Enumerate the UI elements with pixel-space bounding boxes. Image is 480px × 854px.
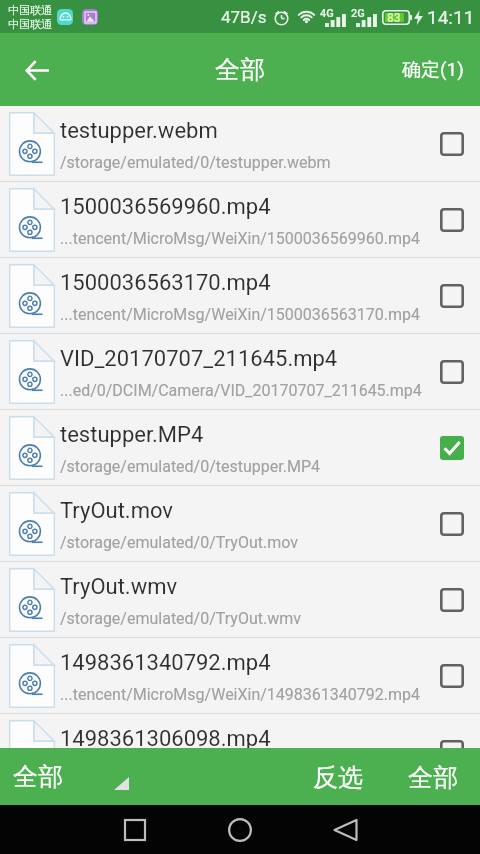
button[interactable]: 确定(1) — [386, 44, 480, 96]
staticText: /storage/emulated/0/TryOut.mov — [60, 533, 298, 552]
staticText: 47B/s — [221, 7, 267, 27]
staticText: 1498361306098.mp4 — [60, 726, 271, 748]
staticText: 1498361340792.mp4 — [60, 650, 271, 676]
staticText: TryOut.wmv — [60, 574, 178, 600]
staticText: ...tencent/MicroMsg/WeiXin/1500036569960… — [60, 229, 420, 248]
staticText: ...tencent/MicroMsg/WeiXin/1500036563170… — [60, 305, 420, 324]
button[interactable]: Back — [323, 808, 367, 852]
button[interactable]: Back — [13, 46, 61, 94]
staticText: 全部 — [13, 761, 63, 792]
button[interactable]: Select file — [440, 284, 464, 308]
button[interactable]: Select file — [440, 436, 464, 460]
staticText: ...ed/0/DCIM/Camera/VID_20170707_211645.… — [60, 381, 422, 400]
staticText: 反选 — [313, 762, 363, 791]
button[interactable]: Select file — [440, 664, 464, 688]
staticText: TryOut.mov — [60, 498, 173, 524]
button[interactable]: 1498361340792.mp4 — [0, 638, 480, 714]
button[interactable]: testupper.MP4 — [0, 410, 480, 486]
staticText: 14:11 — [427, 6, 475, 28]
button[interactable]: 1498361306098.mp4 — [0, 714, 480, 748]
staticText: 中国联通 — [8, 3, 52, 17]
button[interactable]: 全部 — [380, 748, 480, 805]
button[interactable]: Recent apps — [113, 808, 157, 852]
staticText: 全部 — [408, 762, 458, 791]
button[interactable]: 全部 — [0, 749, 141, 804]
button[interactable]: Home — [218, 808, 262, 852]
staticText: /storage/emulated/0/TryOut.wmv — [60, 609, 301, 628]
button[interactable]: 1500036569960.mp4 — [0, 182, 480, 258]
button[interactable]: 反选 — [296, 748, 380, 805]
staticText: 1500036563170.mp4 — [60, 270, 271, 296]
button[interactable]: TryOut.wmv — [0, 562, 480, 638]
staticText: 中国联通 — [8, 17, 52, 31]
staticText: /storage/emulated/0/testupper.webm — [60, 153, 331, 172]
staticText: VID_20170707_211645.mp4 — [60, 346, 338, 372]
staticText: testupper.webm — [60, 118, 218, 144]
staticText: 2G — [351, 7, 365, 20]
staticText: ...tencent/MicroMsg/WeiXin/1498361340792… — [60, 685, 420, 704]
staticText: 全部 — [215, 54, 265, 85]
button[interactable]: VID_20170707_211645.mp4 — [0, 334, 480, 410]
staticText: 83 — [387, 11, 401, 25]
staticText: 4G — [320, 7, 334, 20]
button[interactable]: Select file — [440, 208, 464, 232]
button[interactable]: TryOut.mov — [0, 486, 480, 562]
button[interactable]: 1500036563170.mp4 — [0, 258, 480, 334]
button[interactable]: Select file — [440, 132, 464, 156]
button[interactable]: Select file — [440, 588, 464, 612]
button[interactable]: Select file — [440, 512, 464, 536]
button[interactable]: testupper.webm — [0, 106, 480, 182]
button[interactable]: Select file — [440, 740, 464, 748]
button[interactable]: Select file — [440, 360, 464, 384]
staticText: 1500036569960.mp4 — [60, 194, 271, 220]
staticText: 确定(1) — [402, 58, 464, 82]
staticText: testupper.MP4 — [60, 422, 204, 448]
staticText: /storage/emulated/0/testupper.MP4 — [60, 457, 321, 476]
